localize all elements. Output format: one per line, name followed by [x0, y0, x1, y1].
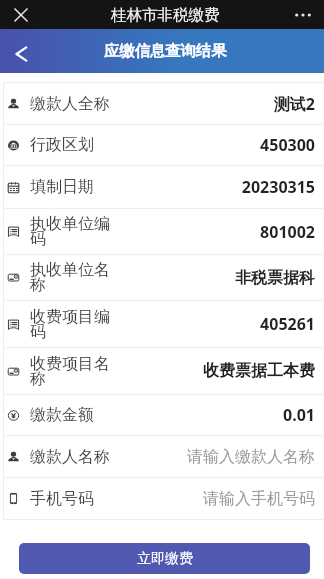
staticText: 450300 — [260, 134, 315, 156]
staticText: 0.01 — [283, 404, 315, 426]
staticText: 801002 — [260, 221, 315, 243]
staticText: 桂林市非税缴费 — [111, 5, 220, 25]
staticText: 立即缴费 — [137, 550, 193, 568]
button[interactable]: More options — [292, 4, 314, 26]
staticText: 405261 — [260, 313, 315, 335]
staticText: 收费项目名 — [30, 354, 110, 374]
staticText: 称 — [30, 369, 46, 389]
staticText: 码 — [30, 229, 46, 249]
staticText: 行政区划 — [30, 135, 94, 155]
staticText: 手机号码 — [30, 489, 94, 509]
staticText: 收费项目编 — [30, 307, 110, 327]
staticText: 收费票据工本费 — [203, 361, 315, 381]
staticText: 请输入手机号码 — [203, 489, 315, 509]
button[interactable]: 立即缴费 — [19, 543, 310, 574]
button[interactable]: 手机号码 — [0, 478, 324, 519]
button[interactable]: Back — [6, 36, 36, 66]
staticText: 缴款金额 — [30, 405, 94, 425]
button[interactable]: 填制日期 — [0, 166, 324, 208]
staticText: 执收单位编 — [30, 214, 110, 234]
staticText: 缴款人名称 — [30, 447, 110, 467]
button[interactable]: 缴款人全称 — [0, 83, 324, 124]
staticText: 测试2 — [273, 93, 315, 115]
staticText: 缴款人全称 — [30, 94, 110, 114]
staticText: 20230315 — [241, 176, 315, 198]
staticText: 填制日期 — [30, 177, 94, 197]
staticText: 称 — [30, 275, 46, 295]
button[interactable]: 缴款人名称 — [0, 436, 324, 477]
staticText: 执收单位名 — [30, 260, 110, 280]
button[interactable]: Close — [9, 3, 33, 27]
staticText: 非税票据科 — [235, 268, 315, 288]
button[interactable]: 收费项目编 — [0, 301, 324, 347]
button[interactable]: 执收单位名 — [0, 255, 324, 300]
button[interactable]: 执收单位编 — [0, 209, 324, 254]
staticText: 码 — [30, 322, 46, 342]
staticText: 应缴信息查询结果 — [104, 41, 227, 60]
staticText: 请输入缴款人名称 — [187, 447, 315, 467]
button[interactable]: 收费项目名 — [0, 348, 324, 394]
button[interactable]: 行政区划 — [0, 125, 324, 165]
button[interactable]: 缴款金额 — [0, 395, 324, 435]
